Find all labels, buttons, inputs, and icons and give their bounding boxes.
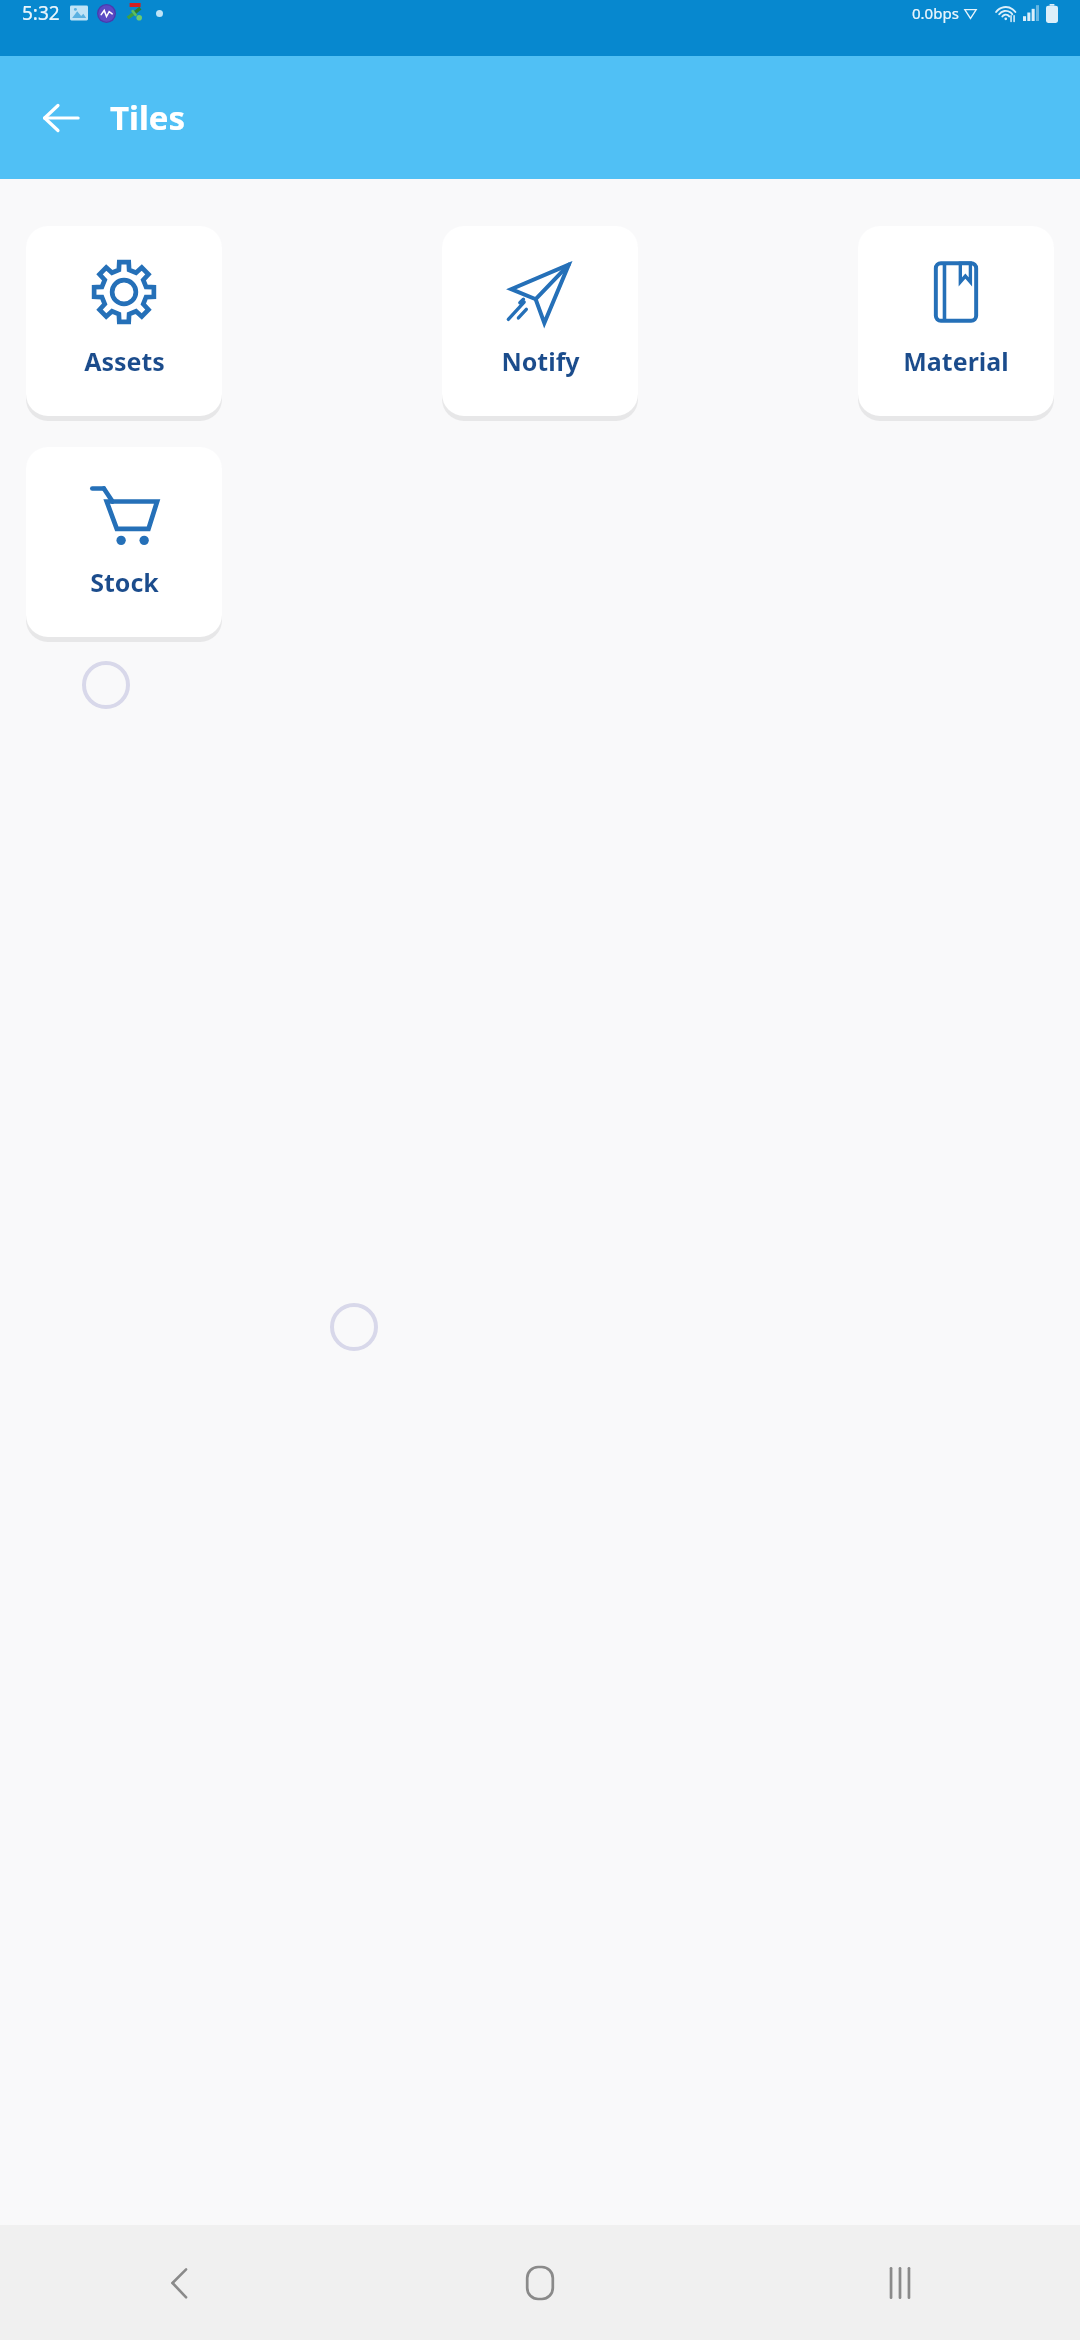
button[interactable]: Notify [440, 222, 640, 419]
staticText: Material [903, 344, 1009, 378]
button[interactable]: Assets [24, 222, 224, 419]
button[interactable]: Material [856, 222, 1056, 419]
staticText: 0.0bps [912, 3, 959, 23]
button[interactable]: Back [135, 2238, 225, 2328]
button[interactable]: Recent apps [855, 2238, 945, 2328]
staticText: Assets [84, 344, 165, 378]
button[interactable]: Stock [24, 443, 224, 640]
staticText: Notify [501, 344, 580, 378]
button[interactable]: Back [30, 87, 92, 149]
staticText: Stock [90, 565, 159, 599]
staticText: 5:32 [22, 0, 60, 26]
button[interactable]: Home [495, 2238, 585, 2328]
staticText: Tiles [110, 95, 186, 140]
